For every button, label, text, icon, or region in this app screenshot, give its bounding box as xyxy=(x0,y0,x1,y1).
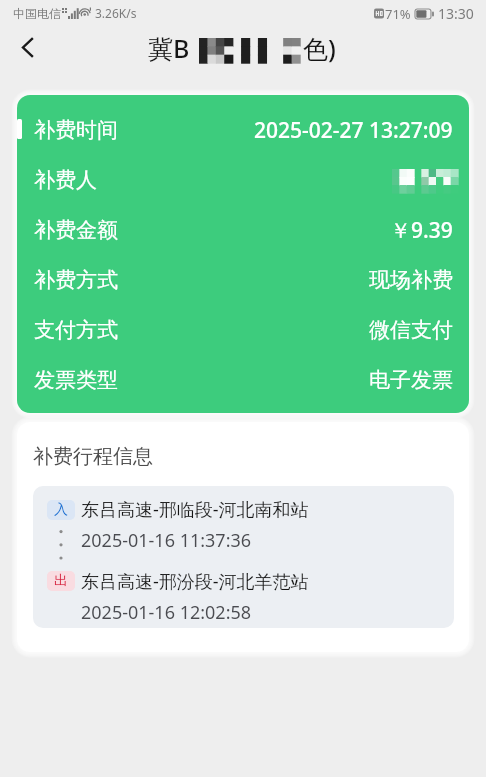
staticText: 入 xyxy=(54,501,68,519)
staticText: 补费金额 xyxy=(34,217,118,243)
staticText: 2025-01-16 12:02:58 xyxy=(81,600,252,625)
staticText: 补费方式 xyxy=(34,267,118,293)
staticText: 补费行程信息 xyxy=(33,444,153,469)
staticText: 现场补费 xyxy=(369,267,453,293)
staticText: 色) xyxy=(303,31,336,65)
button[interactable]: 补费人 xyxy=(17,155,469,205)
staticText: 电子发票 xyxy=(369,367,453,393)
staticText: 冀B xyxy=(148,31,190,65)
staticText: 发票类型 xyxy=(34,367,118,393)
staticText: 中国电信 xyxy=(13,6,61,21)
staticText: 3.26K/s xyxy=(95,5,137,21)
button[interactable]: 补费方式 xyxy=(17,255,469,305)
staticText: 13:30 xyxy=(438,4,474,23)
staticText: 补费时间 xyxy=(34,117,118,143)
staticText: 补费人 xyxy=(34,167,97,193)
button[interactable]: 支付方式 xyxy=(17,305,469,355)
staticText: 东吕高速-邢临段-河北南和站 xyxy=(81,497,309,522)
staticText: 出 xyxy=(54,572,68,590)
button[interactable]: 入 xyxy=(33,486,454,628)
staticText: 支付方式 xyxy=(34,317,118,343)
staticText: 微信支付 xyxy=(369,317,453,343)
staticText: 71% xyxy=(385,5,411,23)
staticText: 东吕高速-邢汾段-河北羊范站 xyxy=(81,569,309,594)
staticText: ￥9.39 xyxy=(390,216,453,245)
button[interactable]: 发票类型 xyxy=(17,355,469,405)
staticText: 2025-01-16 11:37:36 xyxy=(81,528,252,553)
button[interactable]: Back xyxy=(4,24,50,70)
button[interactable]: 补费金额 xyxy=(17,205,469,255)
button[interactable]: 补费时间 xyxy=(17,105,469,155)
staticText: 2025-02-27 13:27:09 xyxy=(254,116,453,145)
